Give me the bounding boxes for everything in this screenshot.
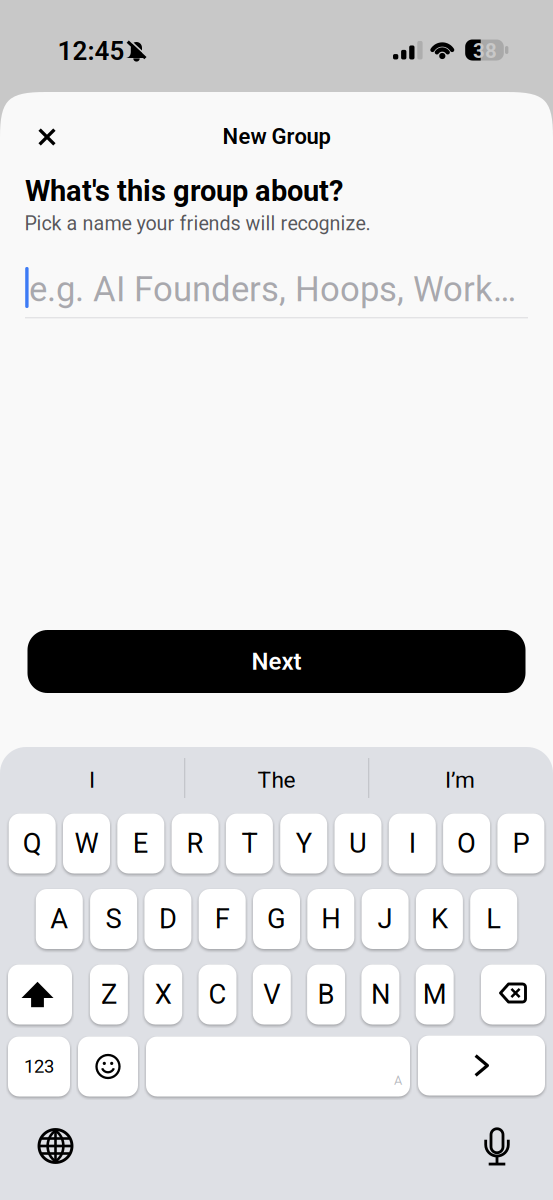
button[interactable]: D xyxy=(144,889,191,949)
staticText: E xyxy=(133,827,149,859)
staticText: O xyxy=(457,827,476,859)
staticText: e.g. AI Founders, Hoops, Work… xyxy=(29,269,516,310)
staticText: F xyxy=(215,903,230,935)
button[interactable]: B xyxy=(307,964,345,1024)
staticText: H xyxy=(321,903,340,935)
staticText: Next xyxy=(251,647,301,675)
staticText: Z xyxy=(101,978,117,1010)
staticText: 123 xyxy=(24,1056,54,1077)
staticText: J xyxy=(378,903,393,935)
button[interactable]: I xyxy=(4,757,179,803)
button[interactable]: E xyxy=(117,813,164,873)
staticText: W xyxy=(74,827,98,859)
button[interactable]: I’m xyxy=(372,757,547,803)
button[interactable]: T xyxy=(226,813,273,873)
button[interactable]: M xyxy=(416,964,454,1024)
staticText: The xyxy=(257,767,295,793)
staticText: B xyxy=(318,978,335,1010)
staticText: K xyxy=(431,903,448,935)
staticText: M xyxy=(423,978,447,1010)
staticText: I xyxy=(89,767,95,793)
staticText: P xyxy=(512,827,529,859)
button[interactable]: N xyxy=(361,964,399,1024)
button[interactable]: I xyxy=(389,813,436,873)
button[interactable] xyxy=(78,1036,138,1096)
staticText: Y xyxy=(296,827,312,859)
button[interactable]: U xyxy=(334,813,381,873)
button[interactable]: Z xyxy=(90,964,128,1024)
staticText: D xyxy=(159,903,177,935)
button[interactable]: K xyxy=(416,889,463,949)
button[interactable]: L xyxy=(470,889,517,949)
button[interactable] xyxy=(418,1035,545,1095)
staticText: L xyxy=(486,903,501,935)
button[interactable]: e.g. AI Founders, Hoops, Work… xyxy=(25,262,528,319)
staticText: R xyxy=(187,827,204,859)
button[interactable]: S xyxy=(90,889,137,949)
staticText: N xyxy=(371,978,390,1010)
button[interactable]: A xyxy=(36,889,83,949)
staticText: 38 xyxy=(473,39,497,63)
staticText: S xyxy=(106,903,122,935)
button[interactable]: Y xyxy=(280,813,327,873)
button[interactable]: H xyxy=(307,889,354,949)
button[interactable] xyxy=(37,127,57,147)
staticText: Pick a name your friends will recognize. xyxy=(24,212,370,235)
staticText: Q xyxy=(23,827,42,859)
staticText: X xyxy=(155,978,172,1010)
staticText: 12:45 xyxy=(57,36,124,66)
staticText: U xyxy=(349,827,367,859)
staticText: New Group xyxy=(222,124,330,149)
button[interactable]: P xyxy=(497,813,544,873)
staticText: V xyxy=(263,978,280,1010)
button[interactable]: Q xyxy=(9,813,56,873)
staticText: I’m xyxy=(445,767,475,793)
button[interactable]: C xyxy=(198,964,236,1024)
staticText: G xyxy=(267,903,286,935)
button[interactable] xyxy=(39,1129,72,1162)
button[interactable]: R xyxy=(172,813,219,873)
button[interactable]: The xyxy=(189,757,364,803)
button[interactable]: Next xyxy=(27,630,525,693)
button[interactable]: A xyxy=(146,1036,410,1096)
button[interactable]: J xyxy=(362,889,409,949)
button[interactable]: O xyxy=(443,813,490,873)
staticText: A xyxy=(50,903,68,935)
staticText: C xyxy=(208,978,226,1010)
button[interactable]: F xyxy=(199,889,246,949)
button[interactable] xyxy=(481,964,545,1024)
button[interactable]: X xyxy=(144,964,182,1024)
staticText: I xyxy=(409,827,416,859)
button[interactable]: W xyxy=(63,813,110,873)
button[interactable]: 123 xyxy=(8,1036,70,1096)
button[interactable] xyxy=(8,964,72,1024)
staticText: What's this group about? xyxy=(25,174,343,208)
button[interactable]: V xyxy=(253,964,291,1024)
button[interactable]: G xyxy=(253,889,300,949)
button[interactable] xyxy=(484,1129,509,1165)
staticText: T xyxy=(241,827,257,859)
staticText: A xyxy=(394,1073,402,1088)
